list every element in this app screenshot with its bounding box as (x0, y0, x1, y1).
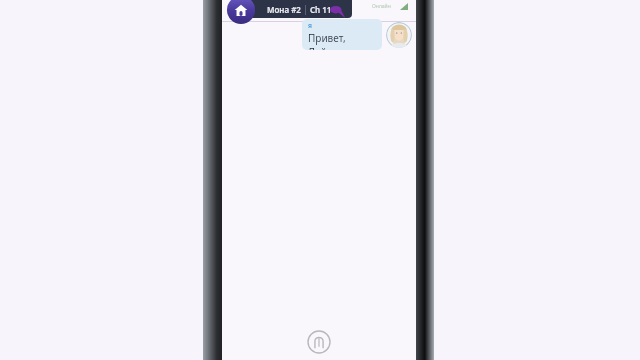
staticText: Мона #2 (267, 4, 301, 15)
button[interactable]: Мона #2 (246, 0, 352, 18)
button[interactable]: Я (302, 19, 382, 50)
staticText: Я (308, 22, 312, 30)
button[interactable]: Profile picture (386, 22, 412, 48)
staticText: Ch 11 (310, 4, 332, 15)
button[interactable]: Home (227, 0, 255, 24)
staticText: Привет, Лайам. (308, 31, 382, 50)
staticText: Онлайн (372, 3, 391, 10)
